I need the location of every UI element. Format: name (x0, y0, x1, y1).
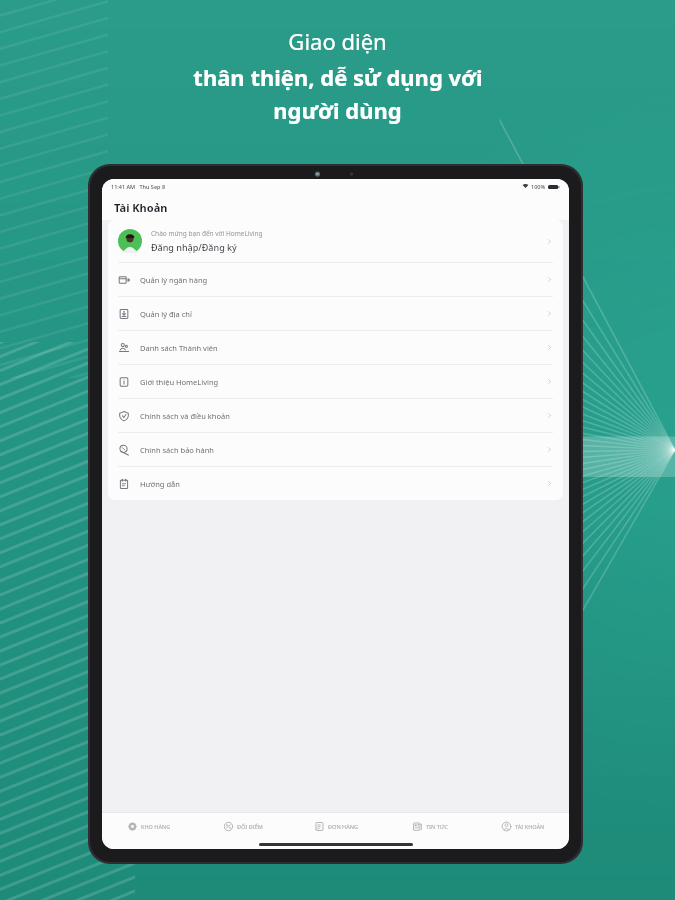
staticText: Quản lý ngân hàng (140, 275, 208, 285)
staticText: ĐƠN HÀNG (328, 823, 359, 830)
button[interactable]: Chính sách và điều khoản (108, 399, 563, 432)
button[interactable]: Chính sách bảo hành (108, 433, 563, 466)
staticText: Giao diện (288, 26, 387, 56)
staticText: người dùng (273, 95, 402, 125)
button[interactable]: KHO HÀNG (102, 813, 196, 839)
button[interactable]: Quản lý ngân hàng (108, 263, 563, 296)
staticText: 100% (531, 183, 546, 190)
staticText: TIN TỨC (426, 823, 448, 830)
button[interactable]: Chào mừng bạn đến với HomeLiving (108, 220, 563, 262)
staticText: Quản lý địa chỉ (140, 309, 192, 319)
button[interactable]: ĐỔI ĐIỂM (196, 813, 290, 839)
staticText: Danh sách Thành viên (140, 343, 218, 353)
staticText: 11:41 AM Thu Sep 8 (111, 183, 166, 190)
button[interactable]: TÀI KHOẢN (476, 813, 569, 839)
staticText: KHO HÀNG (141, 823, 171, 830)
button[interactable]: Giới thiệu HomeLiving (108, 365, 563, 398)
button[interactable]: Danh sách Thành viên (108, 331, 563, 364)
staticText: Hướng dẫn (140, 479, 180, 489)
staticText: Chính sách và điều khoản (140, 411, 230, 421)
button[interactable]: Quản lý địa chỉ (108, 297, 563, 330)
staticText: Đăng nhập/Đăng ký (151, 241, 237, 253)
staticText: Tài Khoản (114, 200, 168, 215)
staticText: ĐỔI ĐIỂM (237, 823, 263, 830)
staticText: Giới thiệu HomeLiving (140, 377, 219, 387)
button[interactable]: Hướng dẫn (108, 467, 563, 500)
button[interactable]: TIN TỨC (383, 813, 476, 839)
staticText: Chào mừng bạn đến với HomeLiving (151, 229, 263, 238)
button[interactable]: ĐƠN HÀNG (290, 813, 383, 839)
staticText: TÀI KHOẢN (515, 823, 545, 830)
staticText: Chính sách bảo hành (140, 445, 214, 455)
staticText: thân thiện, dễ sử dụng với (193, 62, 483, 92)
